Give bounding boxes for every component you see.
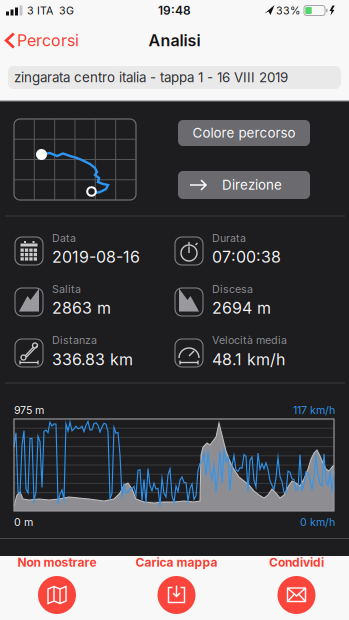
staticText: 19:48	[158, 3, 191, 18]
staticText: 336.83 km	[52, 350, 133, 369]
staticText: 07:00:38	[212, 248, 281, 266]
button[interactable]: Percorsi	[4, 27, 98, 53]
button[interactable]: Non mostrare	[7, 555, 107, 620]
staticText: 2863 m	[52, 299, 111, 317]
staticText: Colore percorso	[192, 125, 295, 141]
button[interactable]: Condividi	[246, 555, 346, 620]
button[interactable]: Direzione	[178, 171, 310, 199]
staticText: Velocità media	[212, 334, 287, 346]
staticText: Analisi	[148, 31, 200, 50]
staticText: Condividi	[269, 555, 324, 570]
button[interactable]: Colore percorso	[178, 120, 310, 146]
staticText: Durata	[212, 232, 246, 244]
button[interactable]: Carica mappa	[126, 555, 226, 620]
staticText: Salita	[52, 283, 81, 295]
staticText: 975 m	[14, 404, 44, 416]
staticText: Non mostrare	[17, 555, 96, 570]
button[interactable]: zingarata centro italia - tappa 1 - 16 V…	[8, 66, 341, 89]
staticText: Carica mappa	[135, 555, 217, 570]
staticText: 48.1 km/h	[212, 350, 285, 369]
staticText: Distanza	[52, 334, 97, 346]
staticText: 0 m	[14, 516, 33, 528]
staticText: 2019-08-16	[52, 248, 140, 266]
staticText: Discesa	[212, 283, 253, 295]
staticText: zingarata centro italia - tappa 1 - 16 V…	[14, 70, 288, 85]
staticText: 117 km/h	[293, 404, 335, 416]
staticText: 0 km/h	[300, 516, 335, 528]
staticText: 2694 m	[212, 299, 271, 317]
staticText: Percorsi	[17, 31, 79, 50]
staticText: Data	[52, 232, 76, 244]
staticText: Direzione	[222, 177, 282, 193]
staticText: 33%	[276, 4, 300, 17]
staticText: 3 ITA 3G	[27, 4, 74, 17]
